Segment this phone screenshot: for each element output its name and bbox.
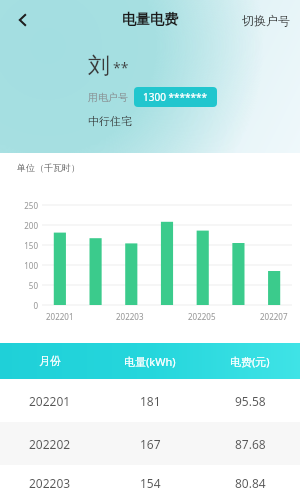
- staticText: 95.58: [235, 393, 266, 409]
- staticText: 电量电费: [122, 11, 178, 29]
- staticText: 切换户号: [242, 13, 290, 28]
- staticText: 202201: [46, 311, 74, 322]
- staticText: 月份: [39, 354, 61, 368]
- staticText: 250: [10, 200, 38, 211]
- staticText: 154: [140, 475, 161, 491]
- staticText: **: [113, 58, 129, 77]
- staticText: 202207: [260, 311, 288, 322]
- staticText: 0: [10, 300, 38, 311]
- staticText: 150: [10, 240, 38, 251]
- staticText: 181: [140, 393, 161, 409]
- button[interactable]: 202202: [0, 422, 300, 465]
- staticText: 单位（千瓦时）: [17, 162, 80, 173]
- staticText: 80.84: [235, 475, 266, 491]
- staticText: 刘: [88, 52, 110, 80]
- staticText: 中行住宅: [88, 114, 132, 128]
- staticText: 202205: [188, 311, 216, 322]
- button[interactable]: Back: [6, 3, 40, 37]
- staticText: 1300 *******: [143, 90, 208, 104]
- staticText: 202203: [116, 311, 144, 322]
- staticText: 202203: [29, 475, 71, 491]
- button[interactable]: 切换户号: [242, 13, 290, 28]
- staticText: 50: [10, 280, 38, 291]
- button[interactable]: 202203: [0, 465, 300, 500]
- staticText: 167: [140, 436, 161, 452]
- button[interactable]: 1300 *******: [143, 90, 208, 104]
- staticText: 电费(元): [230, 354, 270, 369]
- staticText: 100: [10, 260, 38, 271]
- staticText: 202201: [29, 393, 71, 409]
- staticText: 200: [10, 220, 38, 231]
- staticText: 用电户号: [88, 91, 128, 104]
- staticText: 202202: [29, 436, 71, 452]
- staticText: 87.68: [235, 436, 266, 452]
- button[interactable]: 202201: [0, 379, 300, 422]
- staticText: 电量(kWh): [124, 354, 176, 369]
